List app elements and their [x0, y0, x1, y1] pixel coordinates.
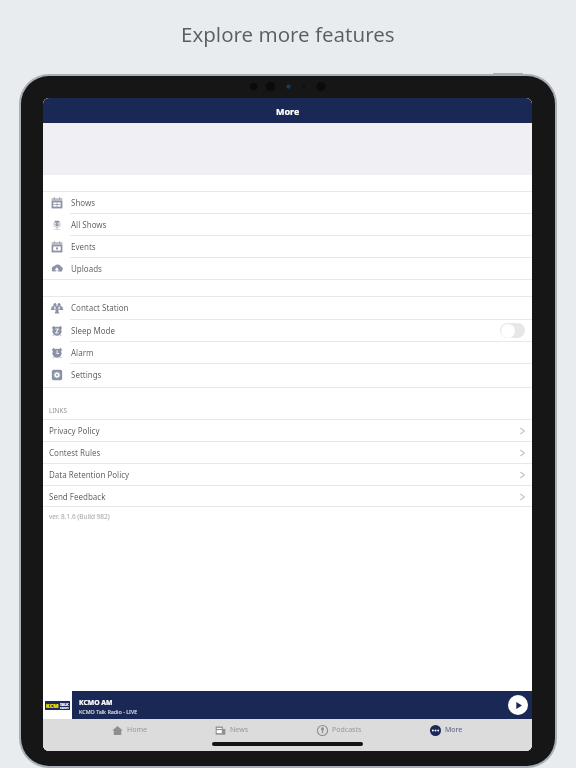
- staticText: Data Retention Policy: [49, 469, 130, 480]
- button[interactable]: News: [189, 719, 273, 741]
- button[interactable]: Settings: [43, 364, 532, 385]
- staticText: KCMO: [46, 702, 60, 709]
- button[interactable]: Alarm: [43, 342, 532, 363]
- staticText: Explore more features: [181, 20, 395, 48]
- button[interactable]: More: [404, 719, 488, 741]
- staticText: Settings: [71, 369, 102, 380]
- button[interactable]: Home: [87, 719, 171, 741]
- staticText: Home: [127, 725, 147, 735]
- staticText: Contact Station: [71, 302, 129, 313]
- button[interactable]: Events: [43, 236, 532, 257]
- button[interactable]: KCMO AM: [72, 691, 532, 719]
- staticText: Privacy Policy: [49, 425, 100, 436]
- staticText: Send Feedback: [49, 491, 106, 502]
- staticText: ver. 8.1.6 (Build 982): [49, 512, 110, 521]
- button[interactable]: Play: [508, 695, 528, 715]
- staticText: KCMO AM: [79, 698, 113, 707]
- button[interactable]: All Shows: [43, 214, 532, 235]
- button[interactable]: Sleep Mode: [43, 320, 532, 341]
- staticText: Contest Rules: [49, 447, 101, 458]
- staticText: Sleep Mode: [71, 325, 116, 336]
- staticText: RADIO: [60, 707, 69, 709]
- staticText: Shows: [71, 197, 96, 208]
- staticText: LINKS: [49, 406, 68, 415]
- staticText: More: [276, 105, 300, 117]
- staticText: Podcasts: [332, 725, 362, 735]
- button[interactable]: Shows: [43, 192, 532, 213]
- button[interactable]: Toggle sleep mode: [500, 323, 525, 338]
- button[interactable]: Data Retention Policy: [43, 464, 532, 485]
- button[interactable]: Privacy Policy: [43, 420, 532, 441]
- staticText: Events: [71, 241, 96, 252]
- button[interactable]: Contact Station: [43, 297, 532, 318]
- staticText: More: [445, 725, 463, 735]
- button[interactable]: Podcasts: [297, 719, 381, 741]
- button[interactable]: Contest Rules: [43, 442, 532, 463]
- staticText: All Shows: [71, 219, 107, 230]
- staticText: KCMO Talk Radio - LIVE: [79, 708, 138, 715]
- button[interactable]: Send Feedback: [43, 486, 532, 507]
- staticText: News: [230, 725, 248, 735]
- staticText: Uploads: [71, 263, 102, 274]
- staticText: Alarm: [71, 347, 94, 358]
- staticText: TALK: [60, 702, 69, 707]
- button[interactable]: Uploads: [43, 258, 532, 279]
